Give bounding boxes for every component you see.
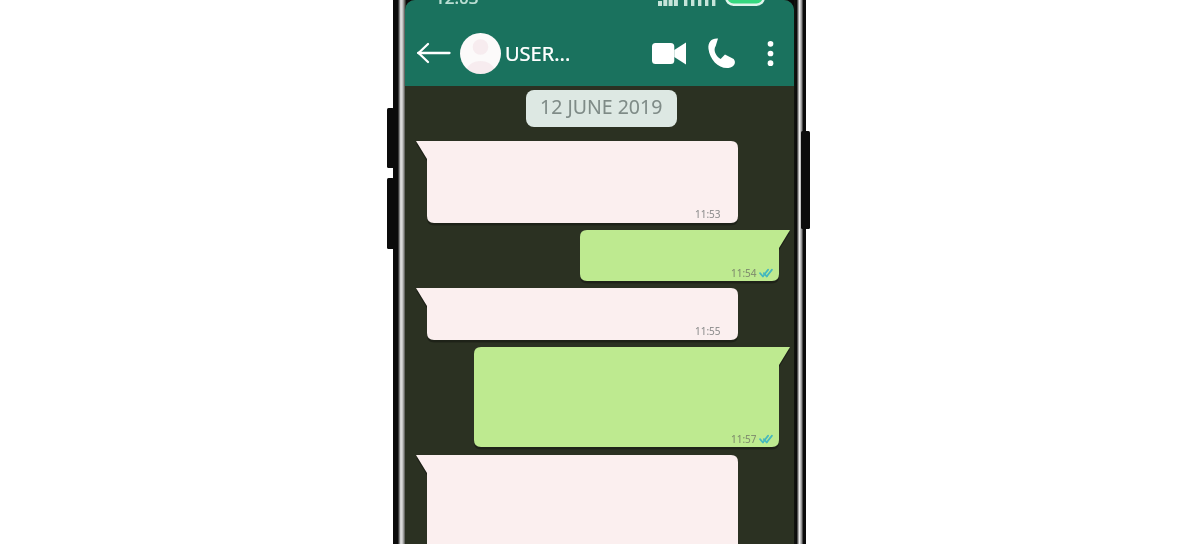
button[interactable]: 11:53 xyxy=(416,141,738,228)
button[interactable]: Voice call xyxy=(700,31,743,75)
button[interactable]: More options xyxy=(753,31,787,75)
button[interactable] xyxy=(416,455,738,544)
staticText: 11:54 xyxy=(731,266,757,280)
button[interactable]: 11:55 xyxy=(416,288,738,345)
button[interactable]: 11:57 xyxy=(474,347,790,452)
staticText: 11:57 xyxy=(731,432,757,446)
staticText: 11:53 xyxy=(695,207,721,221)
staticText: 12:03 xyxy=(435,0,479,9)
button[interactable]: 11:54 xyxy=(580,230,790,286)
button[interactable]: Back xyxy=(409,33,457,73)
button[interactable]: 12 JUNE 2019 xyxy=(526,90,677,127)
button[interactable]: USER... xyxy=(505,34,571,72)
staticText: 12 JUNE 2019 xyxy=(540,93,663,120)
staticText: USER... xyxy=(505,40,571,67)
staticText: 11:55 xyxy=(695,324,721,338)
button[interactable]: Profile picture xyxy=(460,33,501,74)
button[interactable]: Video call xyxy=(646,33,692,73)
